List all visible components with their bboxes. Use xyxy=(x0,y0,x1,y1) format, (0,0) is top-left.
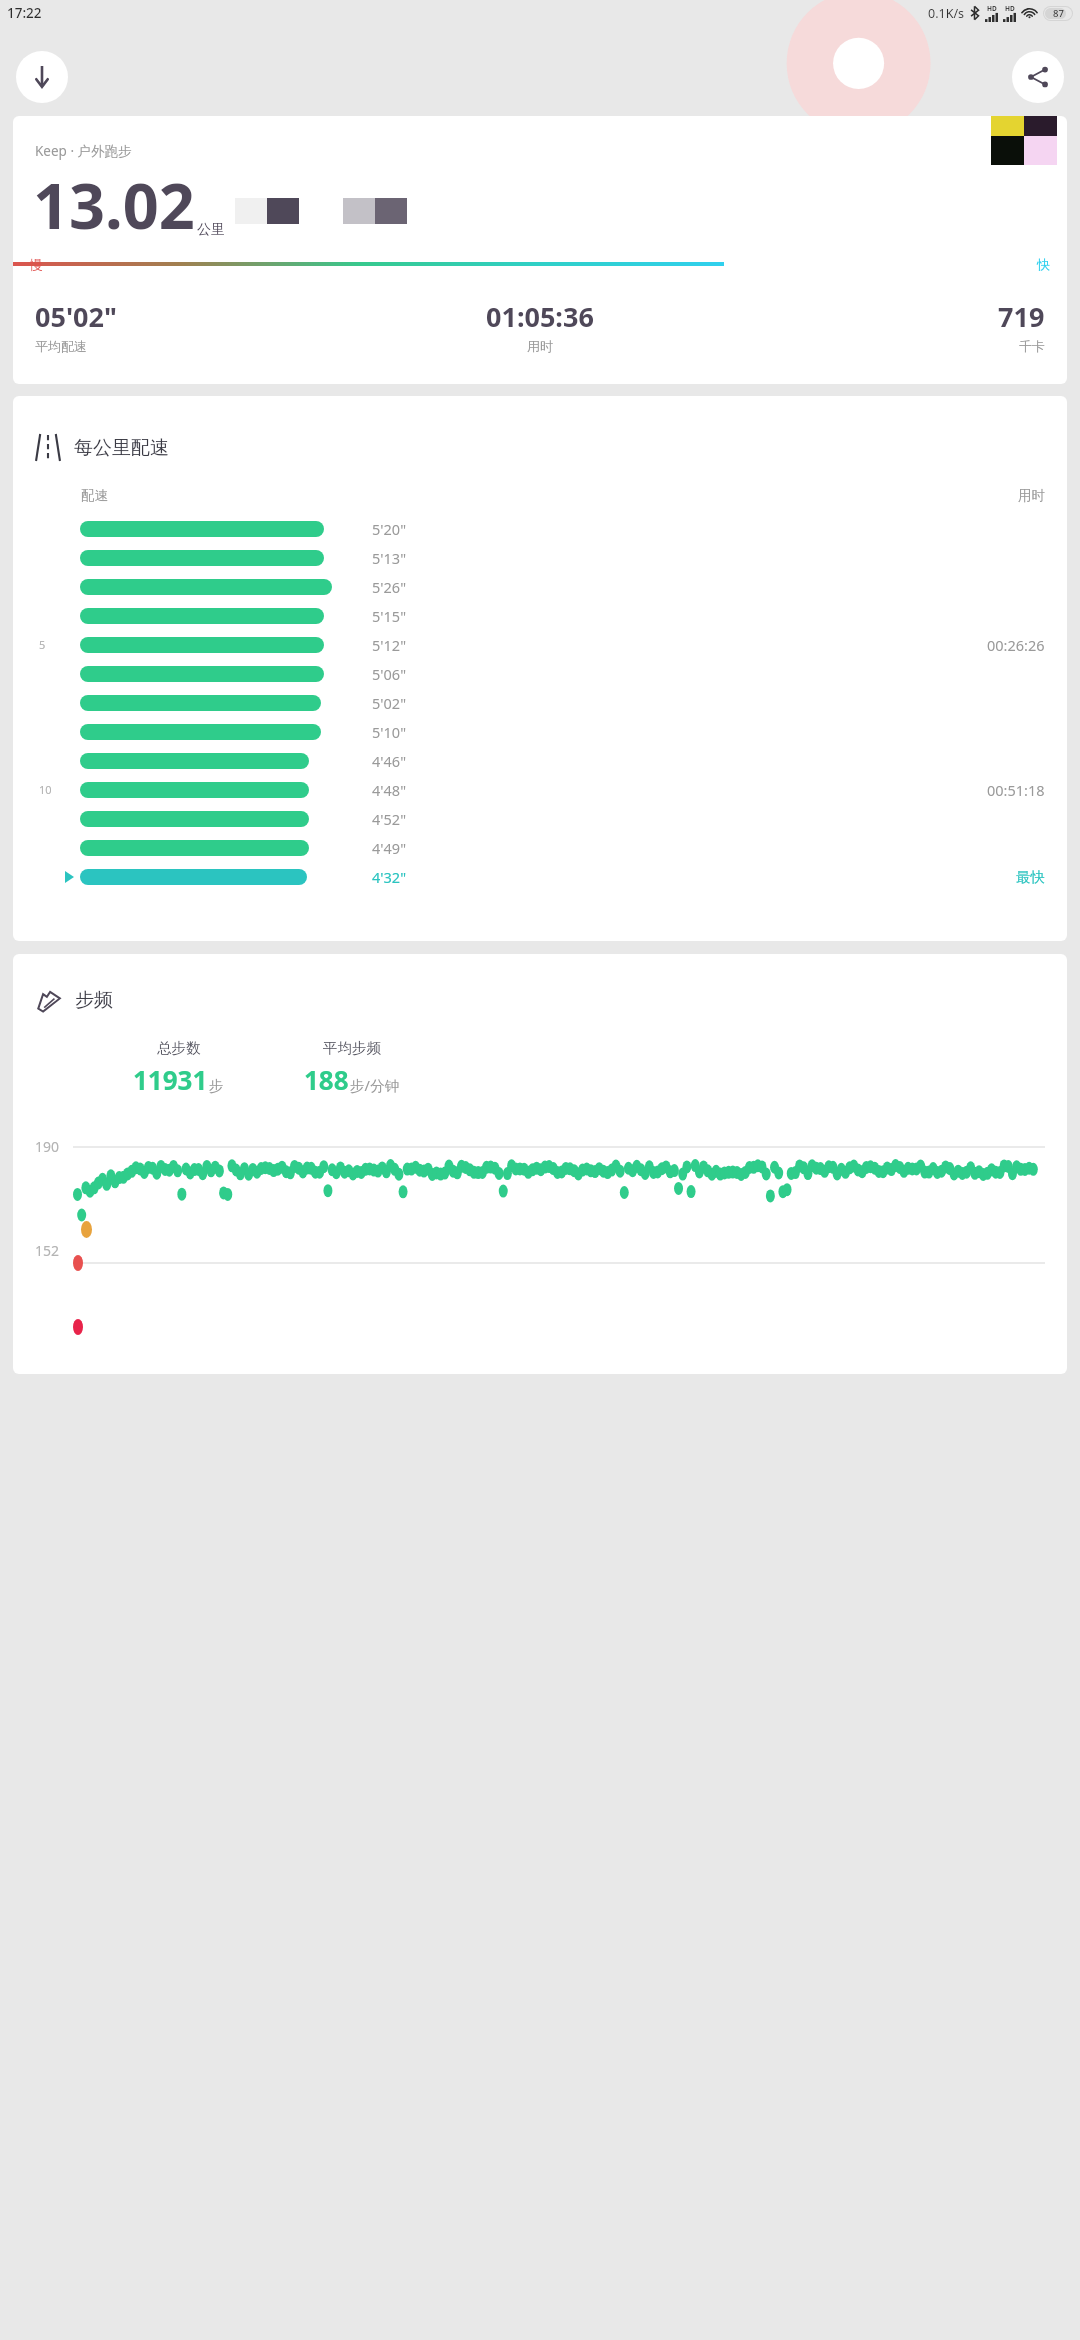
staticText: 4'48" xyxy=(372,780,407,800)
staticText: 5 xyxy=(39,637,46,652)
staticText: 5'12" xyxy=(372,635,407,655)
staticText: 慢 xyxy=(30,256,43,272)
button[interactable]: Download xyxy=(16,51,68,103)
button[interactable]: Keep · 户外跑步 xyxy=(13,116,1067,384)
staticText: 5'06" xyxy=(372,664,407,684)
staticText: 13.02 xyxy=(33,162,195,248)
staticText: 步频 xyxy=(75,988,113,1012)
staticText: 5'26" xyxy=(372,577,407,597)
staticText: HD xyxy=(987,4,997,13)
staticText: 5'20" xyxy=(372,519,407,539)
staticText: 10 xyxy=(39,782,52,797)
staticText: 每公里配速 xyxy=(74,436,169,460)
staticText: 5'10" xyxy=(372,722,407,742)
staticText: 87 xyxy=(1053,7,1064,20)
staticText: 配速 xyxy=(81,487,108,504)
staticText: 用时 xyxy=(1018,487,1045,504)
button[interactable]: 每公里配速 xyxy=(13,396,1067,941)
staticText: 190 xyxy=(35,1137,60,1156)
staticText: 188 xyxy=(304,1062,349,1097)
staticText: 00:51:18 xyxy=(987,780,1045,800)
staticText: 5'02" xyxy=(372,693,407,713)
staticText: 719 xyxy=(998,298,1045,335)
staticText: 快 xyxy=(1037,256,1050,272)
staticText: HD xyxy=(1005,4,1015,13)
staticText: 05'02" xyxy=(35,298,117,335)
staticText: 5'15" xyxy=(372,606,407,626)
staticText: 4'49" xyxy=(372,838,407,858)
staticText: 17:22 xyxy=(7,4,42,22)
staticText: 4'32" xyxy=(372,867,407,887)
staticText: 平均配速 xyxy=(35,338,87,354)
staticText: 4'52" xyxy=(372,809,407,829)
staticText: 用时 xyxy=(527,338,553,354)
staticText: 平均步频 xyxy=(323,1039,381,1057)
staticText: 0.1K/s xyxy=(928,5,965,22)
staticText: 总步数 xyxy=(157,1039,201,1057)
staticText: 11931 xyxy=(133,1062,208,1097)
staticText: 最快 xyxy=(1016,868,1045,886)
button[interactable]: 步频 xyxy=(13,954,1067,1374)
staticText: 152 xyxy=(35,1241,60,1260)
staticText: 00:26:26 xyxy=(987,635,1045,655)
staticText: 步/分钟 xyxy=(350,1075,399,1095)
staticText: 千卡 xyxy=(1019,338,1045,354)
staticText: 4'46" xyxy=(372,751,407,771)
button[interactable]: Share xyxy=(1012,51,1064,103)
staticText: 01:05:36 xyxy=(486,298,594,335)
staticText: 步 xyxy=(209,1077,224,1095)
staticText: 5'13" xyxy=(372,548,407,568)
staticText: 公里 xyxy=(197,221,225,239)
staticText: Keep · 户外跑步 xyxy=(35,142,132,160)
